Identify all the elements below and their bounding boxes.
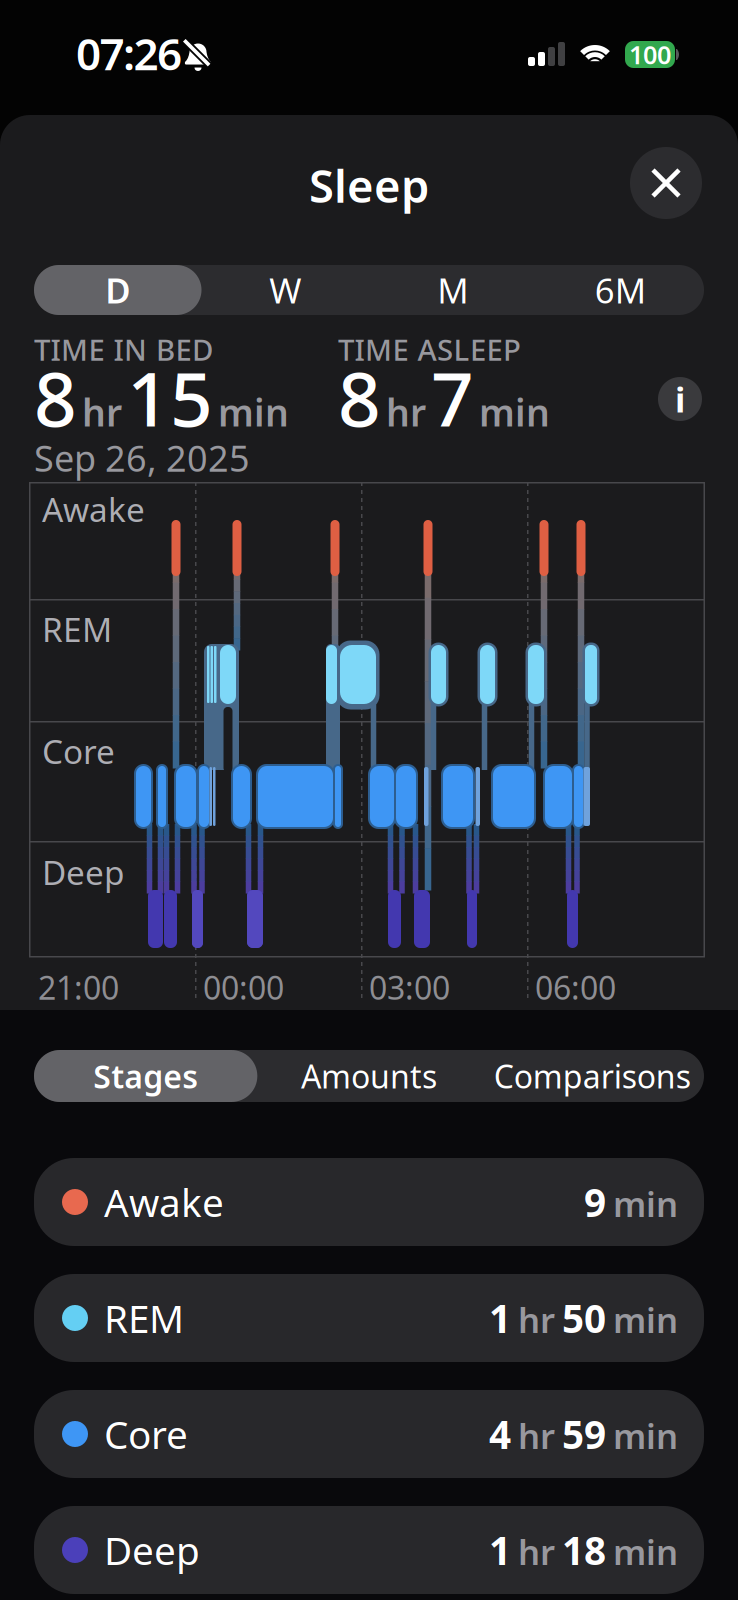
staticText: 9 <box>584 1176 606 1228</box>
staticText: min <box>479 387 550 437</box>
staticText: hr <box>518 1296 555 1342</box>
staticText: Deep <box>104 1524 200 1576</box>
button[interactable]: Deep <box>34 1506 704 1594</box>
staticText: 100 <box>629 38 671 71</box>
staticText: hr <box>518 1528 555 1574</box>
button[interactable]: Stages <box>34 1050 257 1102</box>
staticText: hr <box>82 387 122 437</box>
staticText: 6M <box>595 267 646 313</box>
staticText: Sleep <box>309 155 429 215</box>
staticText: W <box>269 267 301 313</box>
button[interactable]: Core <box>34 1390 704 1478</box>
button[interactable]: Amounts <box>257 1050 481 1102</box>
staticText: 8 <box>34 348 77 447</box>
staticText: Core <box>42 729 115 773</box>
staticText: min <box>613 1412 678 1458</box>
staticText: TIME ASLEEP <box>338 330 521 369</box>
staticText: 8 <box>338 348 381 447</box>
staticText: Stages <box>93 1055 198 1097</box>
staticText: min <box>613 1296 678 1342</box>
staticText: REM <box>42 607 112 651</box>
staticText: 1 <box>489 1524 511 1576</box>
staticText: min <box>613 1528 678 1574</box>
staticText: 4 <box>489 1408 511 1460</box>
staticText: hr <box>518 1412 555 1458</box>
staticText: 50 <box>562 1292 606 1344</box>
staticText: Comparisons <box>494 1055 691 1097</box>
staticText: 00:00 <box>203 966 284 1008</box>
staticText: REM <box>104 1292 184 1344</box>
staticText: 1 <box>489 1292 511 1344</box>
staticText: 15 <box>127 348 213 447</box>
staticText: 7 <box>431 348 474 447</box>
staticText: D <box>105 267 130 313</box>
staticText: M <box>437 267 468 313</box>
staticText: 06:00 <box>535 966 616 1008</box>
staticText: 59 <box>562 1408 606 1460</box>
staticText: min <box>218 387 289 437</box>
button[interactable] <box>630 147 702 219</box>
staticText: Sep 26, 2025 <box>34 434 250 482</box>
button[interactable]: 6M <box>536 265 704 315</box>
button[interactable]: M <box>369 265 536 315</box>
staticText: TIME IN BED <box>34 330 213 369</box>
staticText: 07:26 <box>76 24 182 82</box>
button[interactable]: Awake <box>34 1158 704 1246</box>
staticText: Amounts <box>301 1055 437 1097</box>
button[interactable]: REM <box>34 1274 704 1362</box>
staticText: Awake <box>42 487 145 531</box>
staticText: 21:00 <box>38 966 119 1008</box>
staticText: 03:00 <box>369 966 450 1008</box>
staticText: 18 <box>562 1524 606 1576</box>
button[interactable]: D <box>34 265 201 315</box>
staticText: min <box>613 1180 678 1226</box>
staticText: Deep <box>42 850 125 894</box>
staticText: i <box>675 376 685 422</box>
button[interactable]: i <box>658 376 702 422</box>
staticText: Core <box>104 1408 188 1460</box>
staticText: Awake <box>104 1176 224 1228</box>
button[interactable]: Comparisons <box>481 1050 704 1102</box>
staticText: hr <box>386 387 426 437</box>
button[interactable]: W <box>201 265 369 315</box>
